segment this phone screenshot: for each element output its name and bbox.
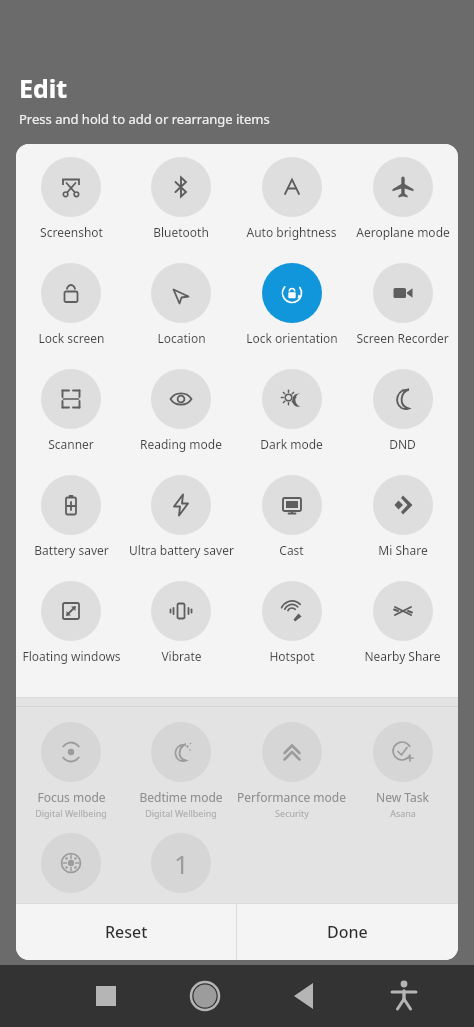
staticText: Digital Wellbeing	[145, 807, 217, 819]
staticText: Nearby Share	[364, 648, 441, 664]
button[interactable]: Hotspot	[236, 574, 347, 680]
button[interactable]: Aeroplane mode	[347, 150, 458, 256]
staticText: Reset	[105, 921, 148, 943]
button[interactable]: Done	[237, 904, 458, 960]
staticText: DND	[389, 436, 416, 452]
button[interactable]: Scanner	[16, 362, 126, 468]
staticText: Mi Share	[378, 542, 428, 558]
staticText: Battery saver	[34, 542, 109, 558]
button[interactable]: Performance mode	[236, 715, 347, 826]
staticText: Dark mode	[260, 436, 323, 452]
staticText: Bedtime mode	[139, 789, 223, 805]
button[interactable]: Dark mode	[236, 362, 347, 468]
button[interactable]: Cast	[236, 468, 347, 574]
staticText: Ultra battery saver	[129, 542, 234, 558]
button[interactable]: Vibrate	[126, 574, 236, 680]
button[interactable]: Home	[155, 965, 254, 1027]
button[interactable]: 1	[126, 826, 236, 903]
staticText: Bluetooth	[153, 224, 209, 240]
staticText: Lock screen	[38, 330, 105, 346]
staticText: Lock orientation	[246, 330, 338, 346]
button[interactable]: Nearby Share	[347, 574, 458, 680]
staticText: Scanner	[48, 436, 94, 452]
staticText: Asana	[390, 807, 416, 819]
staticText: Auto brightness	[246, 224, 337, 240]
button[interactable]: New Task	[347, 715, 458, 826]
button[interactable]: Auto brightness	[236, 150, 347, 256]
staticText: Security	[275, 807, 309, 819]
button[interactable]: Mi Share	[347, 468, 458, 574]
staticText: New Task	[376, 789, 429, 805]
button[interactable]: Reading mode	[126, 362, 236, 468]
button[interactable]: Lock screen	[16, 256, 126, 362]
button[interactable]: Back	[254, 965, 354, 1027]
button[interactable]: Location	[126, 256, 236, 362]
staticText: Reading mode	[140, 436, 222, 452]
button[interactable]: Reset	[16, 904, 236, 960]
button[interactable]: Recents	[56, 965, 155, 1027]
staticText: Done	[327, 921, 368, 943]
staticText: Aeroplane mode	[356, 224, 450, 240]
staticText: Vibrate	[161, 648, 202, 664]
button[interactable]: Bedtime mode	[126, 715, 236, 826]
staticText: Hotspot	[269, 648, 315, 664]
staticText: Location	[157, 330, 206, 346]
button[interactable]: Lock orientation	[236, 256, 347, 362]
staticText: Edit	[19, 71, 68, 105]
button[interactable]: Ultra battery saver	[126, 468, 236, 574]
button[interactable]: Floating windows	[16, 574, 126, 680]
button[interactable]: Screenshot	[16, 150, 126, 256]
button[interactable]: Focus mode	[16, 715, 126, 826]
button[interactable]: Bluetooth	[126, 150, 236, 256]
button[interactable]: Mi Remote	[16, 826, 126, 903]
staticText: Cast	[279, 542, 304, 558]
button[interactable]: Battery saver	[16, 468, 126, 574]
button[interactable]: Screen Recorder	[347, 256, 458, 362]
button[interactable]: Accessibility	[354, 965, 454, 1027]
staticText: Focus mode	[37, 789, 106, 805]
staticText: Floating windows	[22, 648, 121, 664]
staticText: Press and hold to add or rearrange items	[19, 110, 270, 128]
staticText: Performance mode	[237, 789, 346, 805]
staticText: 1	[174, 846, 189, 881]
staticText: Screen Recorder	[356, 330, 449, 346]
button[interactable]: DND	[347, 362, 458, 468]
staticText: Screenshot	[40, 224, 103, 240]
staticText: Digital Wellbeing	[35, 807, 107, 819]
